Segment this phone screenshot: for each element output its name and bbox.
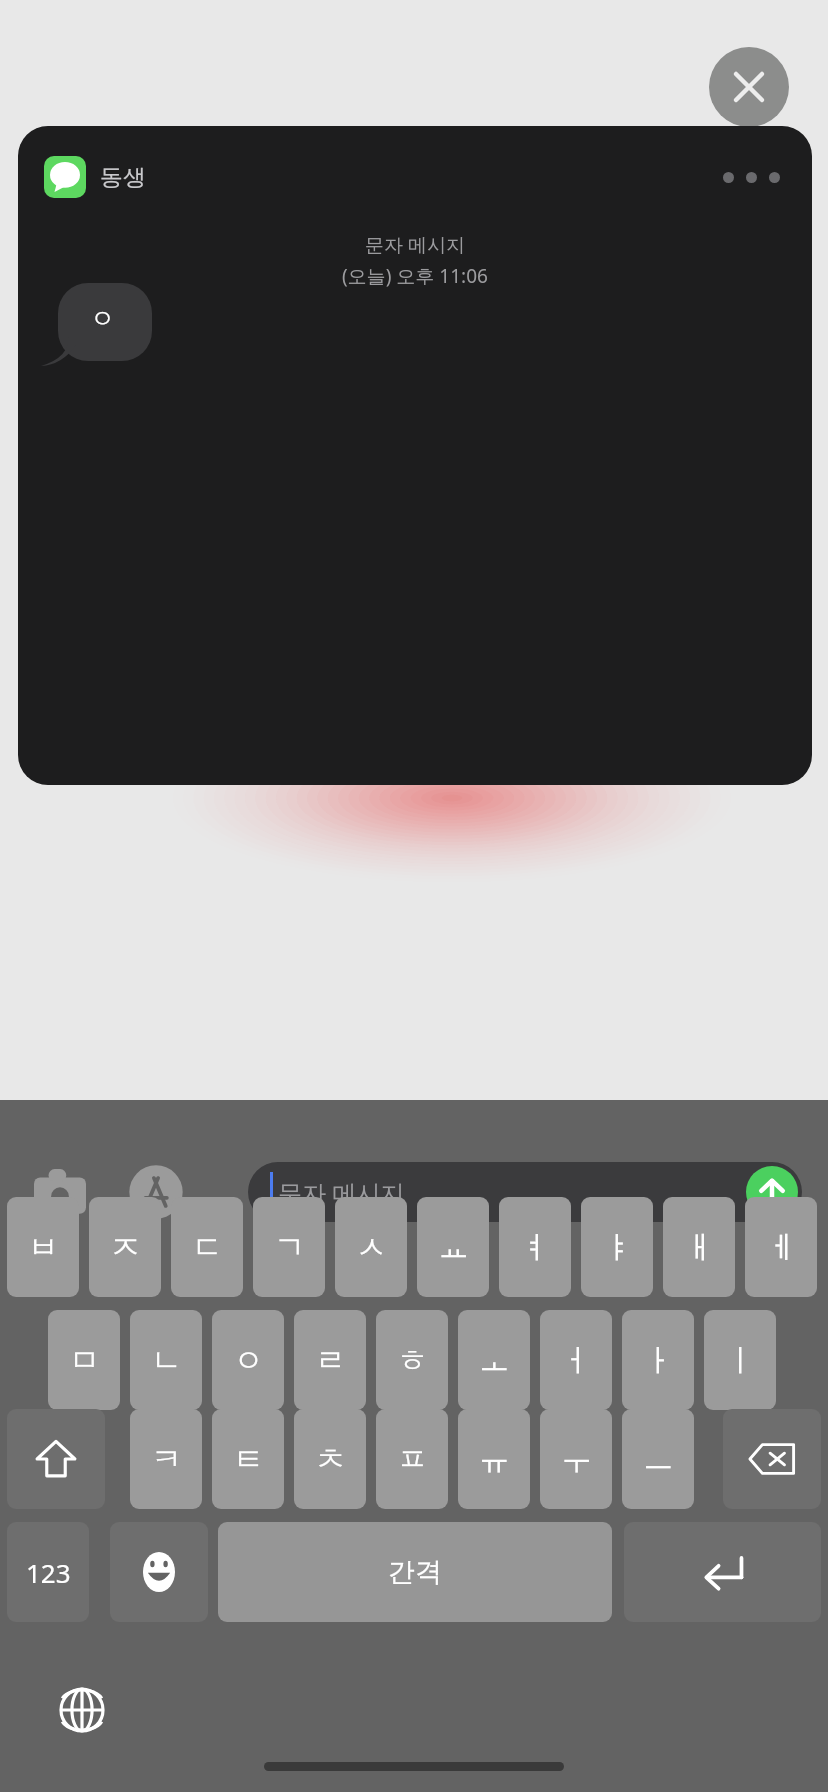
staticText: ㅅ	[356, 1228, 387, 1267]
staticText: 간격	[388, 1555, 442, 1589]
button[interactable]: ㅋ	[130, 1409, 202, 1509]
button[interactable]: ㅕ	[499, 1197, 571, 1297]
button[interactable]: ㄷ	[171, 1197, 243, 1297]
button[interactable]: 줄바꿈	[624, 1522, 821, 1622]
staticText: ㅇ	[90, 303, 115, 334]
staticText: ㅇ	[233, 1341, 264, 1380]
button[interactable]: ㅅ	[335, 1197, 407, 1297]
staticText: ㅋ	[151, 1440, 182, 1479]
button[interactable]: 카메라	[28, 1160, 92, 1224]
staticText: ㅌ	[233, 1440, 264, 1479]
staticText: (오늘) 오후 11:06	[342, 263, 488, 289]
button[interactable]: 더보기	[717, 166, 786, 189]
staticText: ㅍ	[397, 1440, 428, 1479]
staticText: ㄹ	[315, 1341, 346, 1380]
button[interactable]: ㅐ	[663, 1197, 735, 1297]
staticText: ㅜ	[561, 1440, 592, 1479]
staticText: ㅈ	[110, 1228, 141, 1267]
button[interactable]: ㄴ	[130, 1310, 202, 1410]
button[interactable]: 지우기	[723, 1409, 821, 1509]
button[interactable]: 메시지	[44, 156, 86, 198]
staticText: ㅁ	[69, 1341, 100, 1380]
button[interactable]: ㅡ	[622, 1409, 694, 1509]
staticText: ㅏ	[643, 1341, 674, 1380]
button[interactable]: ㅔ	[745, 1197, 817, 1297]
button[interactable]: ㅣ	[704, 1310, 776, 1410]
staticText: ㅎ	[397, 1341, 428, 1380]
button[interactable]: ㅊ	[294, 1409, 366, 1509]
button[interactable]: ㅁ	[48, 1310, 120, 1410]
button[interactable]: ㄹ	[294, 1310, 366, 1410]
staticText: ㄷ	[192, 1228, 223, 1267]
button[interactable]: ㅌ	[212, 1409, 284, 1509]
staticText: ㅠ	[479, 1440, 510, 1479]
button[interactable]: ㅛ	[417, 1197, 489, 1297]
button[interactable]: ㅑ	[581, 1197, 653, 1297]
button[interactable]: ㅍ	[376, 1409, 448, 1509]
staticText: 문자 메시지	[365, 232, 465, 258]
button[interactable]: ㅈ	[89, 1197, 161, 1297]
button[interactable]: 문자 메시지	[248, 1162, 802, 1222]
staticText: ㅊ	[315, 1440, 346, 1479]
staticText: ㅛ	[438, 1228, 469, 1267]
button[interactable]: 언어 변경	[44, 1672, 120, 1748]
button[interactable]: 앱	[124, 1160, 188, 1224]
button[interactable]: 닫기	[709, 47, 789, 127]
button[interactable]: ㅏ	[622, 1310, 694, 1410]
staticText: ㅑ	[602, 1228, 633, 1267]
button[interactable]: 123	[7, 1522, 89, 1622]
button[interactable]: ㅜ	[540, 1409, 612, 1509]
staticText: ㅣ	[725, 1341, 756, 1380]
button[interactable]: ㅗ	[458, 1310, 530, 1410]
button[interactable]: ㅂ	[7, 1197, 79, 1297]
staticText: ㄴ	[151, 1341, 182, 1380]
button[interactable]: ㅇ	[212, 1310, 284, 1410]
button[interactable]: ㄱ	[253, 1197, 325, 1297]
button[interactable]: ㅓ	[540, 1310, 612, 1410]
staticText: 문자 메시지	[278, 1176, 405, 1209]
staticText: ㅔ	[766, 1228, 797, 1267]
staticText: ㄱ	[274, 1228, 305, 1267]
button[interactable]: 보내기	[746, 1166, 798, 1218]
button[interactable]: ㅎ	[376, 1310, 448, 1410]
staticText: ㅐ	[684, 1228, 715, 1267]
staticText: ㅕ	[520, 1228, 551, 1267]
staticText: ㅡ	[643, 1440, 674, 1479]
button[interactable]: 이모티콘	[110, 1522, 208, 1622]
staticText: ㅓ	[561, 1341, 592, 1380]
staticText: ㅂ	[28, 1228, 59, 1267]
button[interactable]: ㅠ	[458, 1409, 530, 1509]
button[interactable]: Shift	[7, 1409, 105, 1509]
staticText: 123	[26, 1555, 71, 1590]
staticText: ㅗ	[479, 1341, 510, 1380]
staticText: 동생	[100, 163, 146, 192]
button[interactable]: 간격	[218, 1522, 612, 1622]
